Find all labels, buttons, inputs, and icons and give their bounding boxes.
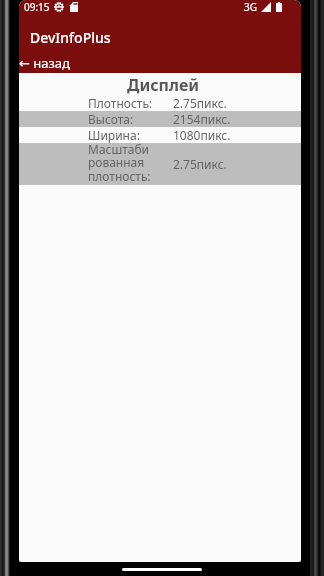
staticText: DevInfoPlus xyxy=(30,28,111,47)
button[interactable]: Высота: xyxy=(19,111,301,127)
other: Note xyxy=(70,2,78,12)
staticText: Масштаби xyxy=(88,141,150,157)
button[interactable]: Плотность: xyxy=(19,94,301,111)
staticText: Дисплей xyxy=(22,74,301,96)
staticText: Высота: xyxy=(88,111,173,127)
other: Signal xyxy=(261,2,271,12)
button[interactable]: Ширина: xyxy=(19,127,301,143)
staticText: 1080пикс. xyxy=(173,127,231,143)
button[interactable]: ← назад xyxy=(19,54,78,72)
staticText: 2.75пикс. xyxy=(173,156,227,172)
staticText: Плотность: xyxy=(88,95,173,111)
staticText: 09:15 xyxy=(24,0,50,14)
staticText: ← назад xyxy=(19,54,70,72)
other: Battery xyxy=(276,2,282,12)
staticText: рованная xyxy=(88,154,145,170)
staticText: плотность: xyxy=(88,168,151,184)
staticText: 2154пикс. xyxy=(173,111,231,127)
button[interactable]: Масштаби xyxy=(19,143,301,185)
staticText: 2.75пикс. xyxy=(173,95,227,111)
other: Alarm xyxy=(54,2,64,12)
staticText: Ширина: xyxy=(88,127,173,143)
staticText: 3G xyxy=(244,0,257,14)
